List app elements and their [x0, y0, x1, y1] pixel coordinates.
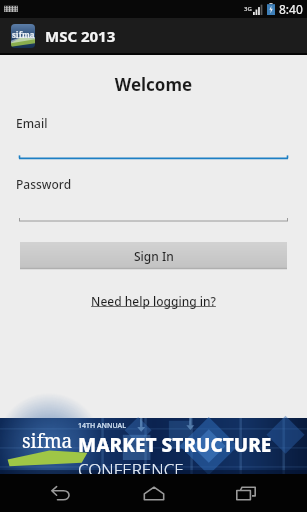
- staticText: Welcome: [0, 73, 307, 96]
- staticText: CONFERENCE: [78, 458, 184, 474]
- staticText: sifma: [12, 29, 35, 40]
- staticText: Sign In: [134, 248, 174, 264]
- button[interactable]: Recent apps: [215, 474, 277, 512]
- staticText: Email: [16, 115, 48, 131]
- button[interactable]: Back: [30, 474, 92, 512]
- button[interactable]: [19, 217, 288, 222]
- button[interactable]: SIFMA Market Structure Conference advert…: [0, 418, 307, 474]
- button[interactable]: Sign In: [20, 242, 287, 269]
- button[interactable]: [19, 155, 288, 160]
- staticText: sifma: [22, 428, 73, 454]
- staticText: 14TH ANNUAL: [78, 421, 126, 431]
- staticText: Need help logging in?: [91, 293, 216, 309]
- staticText: Password: [16, 176, 72, 192]
- staticText: 8:40: [279, 1, 303, 17]
- button[interactable]: Home: [123, 474, 185, 512]
- button[interactable]: Need help logging in?: [70, 293, 237, 309]
- staticText: 3G: [244, 5, 252, 13]
- staticText: MARKET STRUCTURE: [78, 432, 272, 458]
- staticText: MSC 2013: [45, 26, 116, 46]
